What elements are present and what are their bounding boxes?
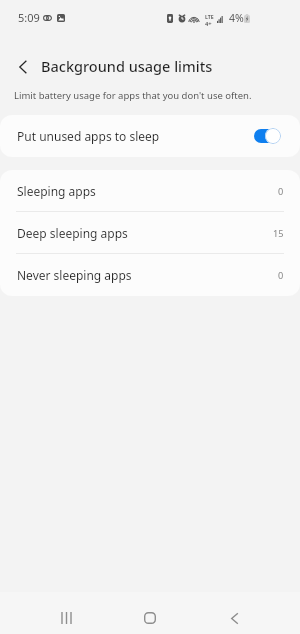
button[interactable]: Deep sleeping apps [0,212,300,254]
staticText: Deep sleeping apps [17,225,128,241]
button[interactable]: Sleeping apps [0,170,300,212]
staticText: Limit battery usage for apps that you do… [14,89,252,102]
staticText: Never sleeping apps [17,267,132,283]
staticText: 4% [229,11,244,25]
staticText: LTE [205,13,214,20]
staticText: 0 [278,269,284,282]
staticText: Sleeping apps [17,183,96,199]
staticText: 0 [278,185,284,198]
button[interactable]: Never sleeping apps [0,254,300,296]
staticText: 5:09 [18,10,40,25]
button[interactable]: Home [130,592,170,634]
button[interactable]: Recent apps [46,592,86,634]
button[interactable]: Navigate up [9,53,36,80]
staticText: 15 [273,227,284,240]
staticText: Put unused apps to sleep [17,128,160,144]
staticText: Background usage limits [41,56,213,76]
button[interactable]: Put unused apps to sleep [0,115,300,157]
button[interactable]: Back [214,592,254,634]
staticText: 4+ [205,20,212,28]
